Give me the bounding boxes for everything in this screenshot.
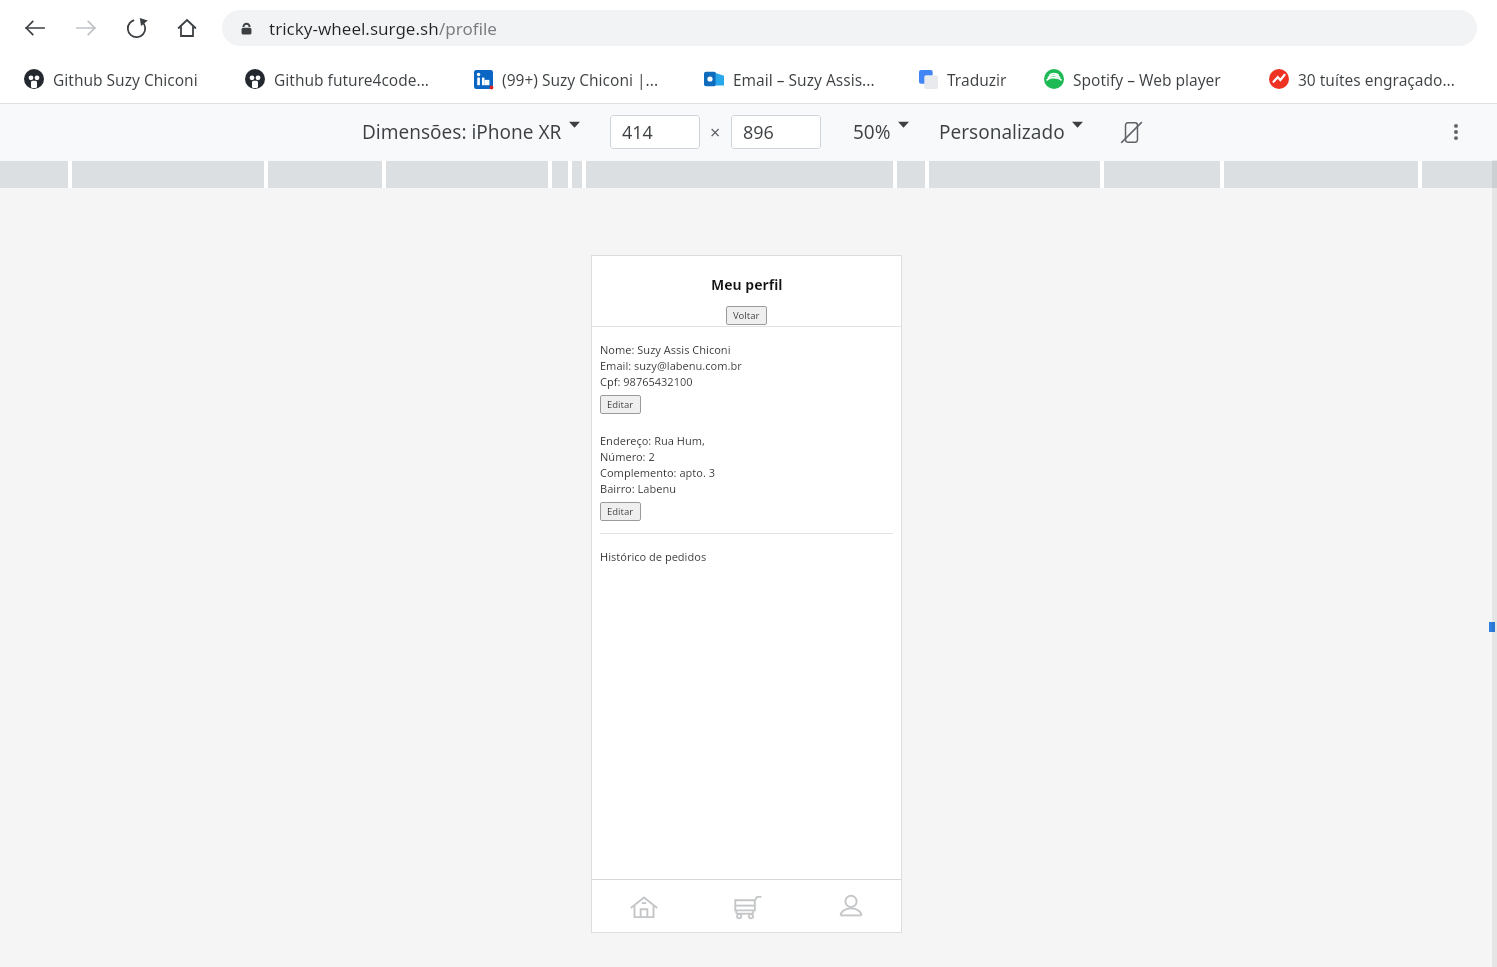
button[interactable]: 896 bbox=[731, 115, 821, 149]
button[interactable]: Spotify – Web player bbox=[1040, 55, 1225, 103]
staticText: 414 bbox=[622, 120, 653, 145]
button[interactable]: Email – Suzy Assis... bbox=[700, 55, 879, 103]
staticText: Voltar bbox=[733, 309, 760, 322]
button[interactable]: Home bbox=[170, 11, 204, 45]
staticText: /profile bbox=[439, 17, 497, 40]
button[interactable]: Editar bbox=[600, 502, 641, 521]
staticText: Github future4code... bbox=[274, 69, 429, 90]
button[interactable]: 414 bbox=[610, 115, 700, 149]
button[interactable]: Dimensões: iPhone XR bbox=[360, 117, 582, 147]
staticText: 50% bbox=[853, 119, 891, 145]
button[interactable]: Home bbox=[592, 880, 695, 933]
staticText: (99+) Suzy Chiconi |... bbox=[502, 69, 659, 90]
staticText: 896 bbox=[743, 120, 774, 145]
staticText: Github Suzy Chiconi bbox=[53, 69, 198, 90]
staticText: Histórico de pedidos bbox=[600, 549, 707, 564]
button[interactable]: tricky-wheel.surge.sh bbox=[222, 10, 1477, 46]
button[interactable]: (99+) Suzy Chiconi |... bbox=[470, 55, 663, 103]
staticText: Bairro: Labenu bbox=[600, 481, 676, 496]
staticText: Email – Suzy Assis... bbox=[733, 69, 875, 90]
staticText: Meu perfil bbox=[711, 275, 783, 294]
button[interactable]: Profile bbox=[799, 880, 902, 933]
staticText: Endereço: Rua Hum, bbox=[600, 433, 706, 448]
button[interactable]: Traduzir bbox=[915, 55, 1011, 103]
button[interactable]: Forward bbox=[69, 11, 103, 45]
button[interactable]: Back bbox=[18, 11, 52, 45]
staticText: Nome: Suzy Assis Chiconi bbox=[600, 342, 731, 357]
button[interactable]: Github future4code... bbox=[241, 55, 433, 103]
button[interactable]: Rotate bbox=[1115, 116, 1147, 148]
staticText: Dimensões: iPhone XR bbox=[362, 119, 562, 145]
staticText: Personalizado bbox=[939, 119, 1065, 145]
staticText: × bbox=[710, 120, 721, 145]
button[interactable]: Personalizado bbox=[937, 117, 1085, 147]
button[interactable]: 30 tuítes engraçado... bbox=[1265, 55, 1459, 103]
button[interactable]: Github Suzy Chiconi bbox=[20, 55, 202, 103]
staticText: Editar bbox=[607, 505, 634, 518]
staticText: 30 tuítes engraçado... bbox=[1298, 69, 1455, 90]
staticText: Número: 2 bbox=[600, 449, 655, 464]
staticText: tricky-wheel.surge.sh bbox=[269, 17, 439, 40]
button[interactable]: Voltar bbox=[726, 306, 767, 325]
staticText: Traduzir bbox=[947, 69, 1007, 90]
staticText: Spotify – Web player bbox=[1073, 69, 1221, 90]
button[interactable]: Reload bbox=[119, 11, 153, 45]
button[interactable]: Cart bbox=[695, 880, 798, 933]
button[interactable]: Editar bbox=[600, 395, 641, 414]
staticText: Cpf: 98765432100 bbox=[600, 374, 693, 389]
staticText: Complemento: apto. 3 bbox=[600, 465, 716, 480]
button[interactable]: 50% bbox=[851, 117, 911, 147]
staticText: Email: suzy@labenu.com.br bbox=[600, 358, 742, 373]
button[interactable]: More options bbox=[1441, 117, 1471, 147]
staticText: Editar bbox=[607, 398, 634, 411]
